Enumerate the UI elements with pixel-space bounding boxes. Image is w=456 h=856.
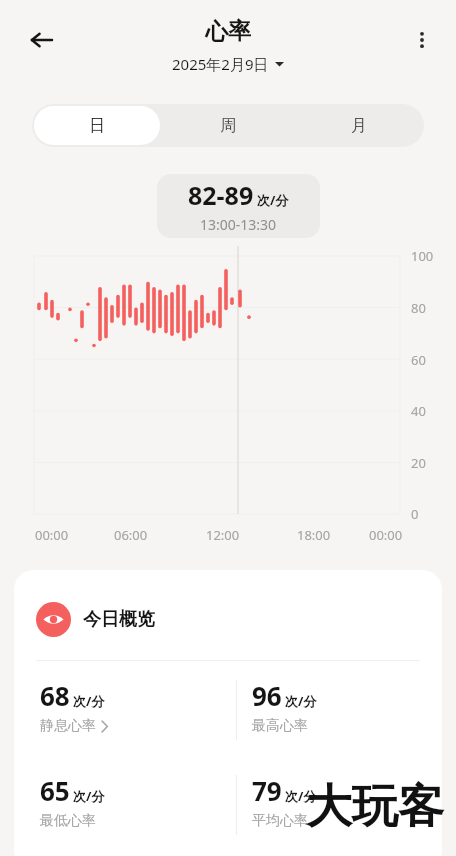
staticText: 周 <box>220 116 236 136</box>
staticText: 18:00 <box>297 526 331 544</box>
button[interactable]: 月 <box>295 106 422 145</box>
staticText: 次/分 <box>285 787 317 805</box>
staticText: 40 <box>411 402 426 420</box>
staticText: 68 <box>40 678 70 713</box>
staticText: 00:00 <box>369 526 403 544</box>
button[interactable]: 日 <box>34 106 160 145</box>
button[interactable]: 65 <box>38 773 228 830</box>
staticText: 0 <box>411 505 419 523</box>
staticText: 12:00 <box>206 526 240 544</box>
staticText: 82-89 <box>188 178 254 212</box>
staticText: 13:00-13:30 <box>200 215 277 234</box>
staticText: 心率 <box>205 17 251 46</box>
button[interactable]: More options <box>400 18 444 62</box>
button[interactable]: 2025年2月9日 <box>172 54 284 74</box>
staticText: 2025年2月9日 <box>172 54 269 74</box>
button[interactable]: 79 <box>250 773 440 830</box>
staticText: 日 <box>89 116 105 136</box>
button[interactable]: Back <box>20 18 64 62</box>
staticText: 20 <box>411 454 426 472</box>
staticText: 06:00 <box>114 526 148 544</box>
staticText: 月 <box>351 116 367 136</box>
staticText: 次/分 <box>257 191 289 209</box>
button[interactable]: 96 <box>250 678 440 735</box>
staticText: 65 <box>40 773 70 808</box>
staticText: 平均心率 <box>252 812 308 830</box>
staticText: 79 <box>252 773 282 808</box>
staticText: 静息心率 <box>40 717 96 735</box>
button[interactable]: 68 <box>38 678 228 735</box>
staticText: 今日概览 <box>83 608 155 631</box>
staticText: 100 <box>411 247 434 265</box>
button[interactable]: 今日概览 <box>36 597 378 641</box>
staticText: 60 <box>411 351 426 369</box>
staticText: 80 <box>411 299 426 317</box>
staticText: 最高心率 <box>252 717 308 735</box>
staticText: 大玩客 <box>306 778 444 836</box>
staticText: 最低心率 <box>40 812 96 830</box>
button[interactable]: 周 <box>164 106 291 145</box>
staticText: 次/分 <box>285 692 317 710</box>
staticText: 次/分 <box>73 692 105 710</box>
staticText: 00:00 <box>35 526 69 544</box>
staticText: 次/分 <box>73 787 105 805</box>
staticText: 96 <box>252 678 282 713</box>
